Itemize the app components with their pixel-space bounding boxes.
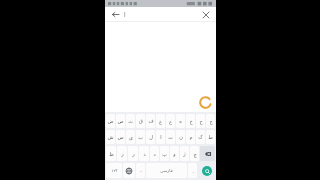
- staticText: ذ: [143, 151, 146, 157]
- button[interactable]: ی: [126, 130, 135, 144]
- button[interactable]: ظ: [106, 146, 116, 161]
- button[interactable]: ز: [117, 146, 127, 161]
- button[interactable]: Change language: [123, 163, 135, 178]
- button[interactable]: .: [188, 163, 197, 178]
- staticText: خ: [189, 118, 193, 124]
- staticText: ن: [179, 134, 183, 140]
- staticText: ض: [107, 118, 114, 124]
- button[interactable]: م: [186, 130, 195, 144]
- button[interactable]: فارسی: [146, 163, 187, 178]
- staticText: ع: [169, 118, 172, 124]
- staticText: ژ: [183, 151, 186, 157]
- button[interactable]: ط: [206, 130, 215, 144]
- button[interactable]: س: [116, 130, 125, 144]
- staticText: غ: [159, 118, 162, 124]
- button[interactable]: خ: [186, 114, 195, 128]
- button[interactable]: ا: [124, 7, 199, 22]
- button[interactable]: Back: [109, 8, 122, 21]
- button[interactable]: ک: [196, 130, 205, 144]
- staticText: ش: [107, 134, 114, 140]
- staticText: ق: [139, 118, 143, 124]
- button[interactable]: و: [170, 146, 179, 161]
- button[interactable]: ع: [166, 114, 175, 128]
- staticText: ر: [132, 151, 135, 157]
- button[interactable]: د: [150, 146, 159, 161]
- staticText: .: [192, 168, 194, 174]
- staticText: س: [117, 134, 124, 140]
- staticText: و: [173, 151, 176, 157]
- staticText: ،: [140, 168, 142, 173]
- staticText: ت: [168, 134, 173, 140]
- button[interactable]: ر: [128, 146, 138, 161]
- button[interactable]: ذ: [139, 146, 149, 161]
- staticText: ک: [198, 134, 203, 140]
- button[interactable]: ه: [176, 114, 185, 128]
- button[interactable]: ف: [146, 114, 155, 128]
- staticText: ؟١٢: [111, 168, 118, 173]
- staticText: ا: [160, 134, 162, 140]
- button[interactable]: Clear: [199, 8, 212, 21]
- button[interactable]: ا: [156, 130, 165, 144]
- button[interactable]: ن: [176, 130, 185, 144]
- staticText: چ: [193, 151, 197, 157]
- staticText: ه: [179, 118, 182, 124]
- staticText: ل: [149, 134, 153, 140]
- staticText: ط: [208, 134, 213, 140]
- button[interactable]: پ: [160, 146, 169, 161]
- button[interactable]: ،: [136, 163, 145, 178]
- button[interactable]: ض: [106, 114, 115, 128]
- button[interactable]: ث: [126, 114, 135, 128]
- staticText: ج: [209, 118, 213, 124]
- button[interactable]: ب: [136, 130, 145, 144]
- staticText: ف: [148, 118, 154, 124]
- staticText: ا: [124, 11, 126, 18]
- staticText: ص: [117, 118, 124, 124]
- button[interactable]: Search: [198, 163, 215, 178]
- staticText: ز: [121, 151, 124, 157]
- staticText: فارسی: [160, 168, 173, 173]
- button[interactable]: ق: [136, 114, 145, 128]
- staticText: ث: [128, 118, 133, 124]
- staticText: ب: [138, 134, 143, 140]
- button[interactable]: ژ: [180, 146, 189, 161]
- button[interactable]: ص: [116, 114, 125, 128]
- staticText: ی: [129, 134, 133, 140]
- button[interactable]: ؟١٢: [106, 163, 122, 178]
- button[interactable]: Backspace: [200, 146, 215, 161]
- button[interactable]: ح: [196, 114, 205, 128]
- button[interactable]: چ: [190, 146, 199, 161]
- staticText: د: [153, 151, 156, 157]
- button[interactable]: ش: [106, 130, 115, 144]
- button[interactable]: ت: [166, 130, 175, 144]
- button[interactable]: ج: [206, 114, 215, 128]
- button[interactable]: غ: [156, 114, 165, 128]
- staticText: ح: [199, 118, 203, 124]
- staticText: ظ: [109, 151, 114, 157]
- button[interactable]: ل: [146, 130, 155, 144]
- staticText: م: [189, 134, 193, 140]
- staticText: پ: [162, 151, 167, 157]
